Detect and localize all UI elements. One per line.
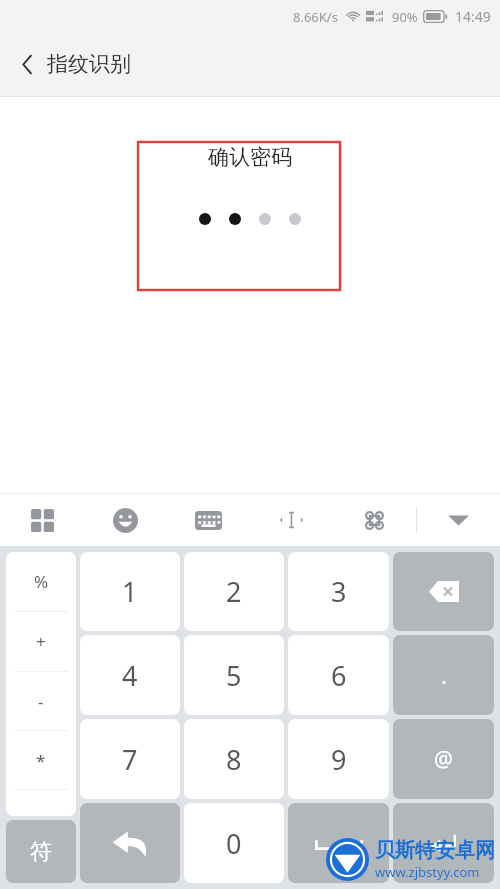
button[interactable]: 8 [184, 719, 284, 799]
button[interactable]: - [6, 672, 76, 730]
button[interactable]: 2 [184, 552, 284, 631]
staticText: 贝斯特安卓网 [375, 838, 495, 863]
button[interactable]: Shortcuts [333, 494, 416, 546]
staticText: 90% [392, 8, 418, 26]
staticText: . [441, 660, 447, 690]
button[interactable]: Delete [393, 552, 494, 631]
button[interactable]: 0 [184, 803, 284, 883]
button[interactable]: Switch keyboard [167, 494, 250, 546]
button[interactable]: 1 [80, 552, 180, 631]
button[interactable]: Enter [393, 803, 494, 883]
button[interactable]: Panel [0, 494, 84, 546]
staticText: 7 [122, 741, 138, 778]
button[interactable]: + [6, 612, 76, 671]
other: Back [14, 51, 40, 77]
staticText: 2 [226, 573, 242, 610]
button[interactable]: 3 [288, 552, 389, 631]
staticText: 1 [122, 573, 138, 610]
staticText: www.zjbstyy.com [375, 863, 480, 881]
staticText: @ [434, 745, 453, 774]
staticText: 5 [226, 657, 242, 694]
button[interactable]: * [6, 731, 76, 789]
button[interactable]: 4 [80, 635, 180, 715]
button[interactable]: Backspace back [80, 803, 180, 883]
button[interactable]: Space [288, 803, 389, 883]
staticText: + [36, 630, 46, 653]
button[interactable]: Move cursor [250, 494, 333, 546]
button[interactable]: Period [393, 635, 494, 715]
button[interactable]: 9 [288, 719, 389, 799]
staticText: 8.66K/s [293, 8, 338, 26]
button[interactable]: 7 [80, 719, 180, 799]
staticText: % [34, 570, 49, 593]
staticText: 3 [331, 573, 347, 610]
staticText: * [36, 749, 46, 772]
staticText: 0 [226, 825, 242, 862]
button[interactable]: 符 [6, 820, 76, 883]
staticText: 符 [30, 838, 52, 866]
staticText: 指纹识别 [47, 51, 131, 77]
button[interactable]: 5 [184, 635, 284, 715]
button[interactable]: Emoji [84, 494, 167, 546]
staticText: 4 [122, 657, 138, 694]
button[interactable]: Back [0, 32, 149, 96]
button[interactable]: % [6, 552, 76, 611]
button[interactable]: Hide keyboard [417, 494, 500, 546]
staticText: 确认密码 [208, 144, 292, 170]
staticText: 9 [331, 741, 347, 778]
button[interactable]: At sign [393, 719, 494, 799]
staticText: 8 [226, 741, 242, 778]
staticText: - [38, 690, 44, 713]
staticText: 14:49 [455, 7, 491, 26]
staticText: 6 [331, 657, 347, 694]
button[interactable]: 6 [288, 635, 389, 715]
